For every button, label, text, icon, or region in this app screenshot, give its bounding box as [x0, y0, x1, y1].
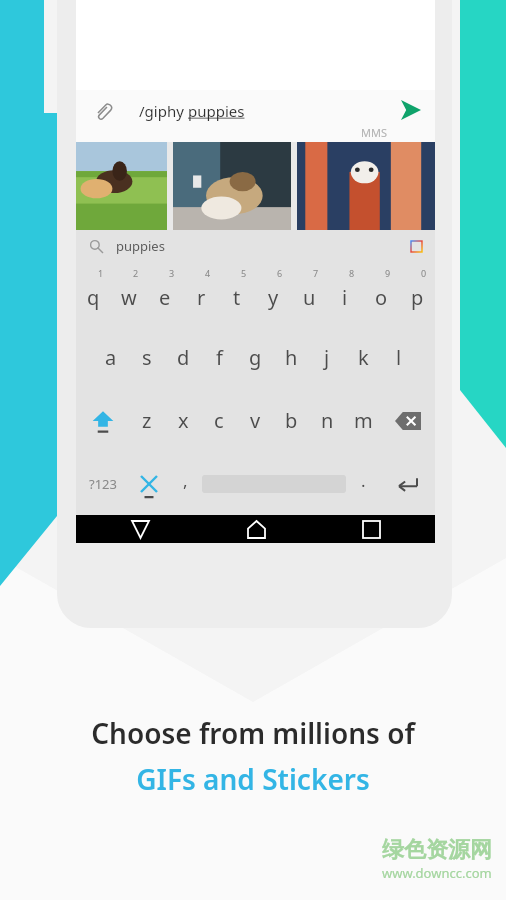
- staticText: h: [285, 344, 298, 371]
- staticText: b: [285, 407, 298, 434]
- staticText: puppies: [116, 237, 165, 255]
- button[interactable]: c: [201, 389, 237, 452]
- button[interactable]: l: [381, 326, 417, 389]
- staticText: Choose from millions of: [91, 714, 415, 752]
- button[interactable]: Backspace: [381, 389, 435, 452]
- staticText: f: [216, 344, 223, 371]
- button[interactable]: Home: [236, 515, 276, 543]
- staticText: t: [233, 284, 241, 311]
- staticText: n: [321, 407, 334, 434]
- button[interactable]: n: [309, 389, 345, 452]
- staticText: .: [361, 469, 366, 492]
- staticText: 5: [241, 267, 247, 279]
- button[interactable]: m: [345, 389, 381, 452]
- staticText: MMS: [361, 125, 387, 140]
- staticText: i: [342, 284, 348, 311]
- button[interactable]: v: [237, 389, 273, 452]
- staticText: g: [249, 344, 262, 371]
- button[interactable]: 0: [399, 262, 435, 326]
- staticText: 8: [349, 267, 355, 279]
- button[interactable]: Back: [120, 515, 160, 543]
- button[interactable]: 2: [111, 262, 147, 326]
- button[interactable]: Attach: [86, 95, 120, 129]
- button[interactable]: 7: [291, 262, 327, 326]
- button[interactable]: 8: [327, 262, 363, 326]
- button[interactable]: h: [273, 326, 309, 389]
- button[interactable]: b: [273, 389, 309, 452]
- staticText: k: [358, 344, 369, 371]
- staticText: 7: [313, 267, 319, 279]
- staticText: q: [87, 284, 100, 311]
- button[interactable]: 5: [219, 262, 255, 326]
- button[interactable]: s: [129, 326, 165, 389]
- button[interactable]: [202, 468, 346, 499]
- button[interactable]: x: [165, 389, 201, 452]
- button[interactable]: Emoji: [130, 452, 168, 515]
- button[interactable]: k: [345, 326, 381, 389]
- button[interactable]: 1: [76, 262, 111, 326]
- button[interactable]: .: [346, 452, 380, 515]
- staticText: 绿色资源网: [382, 836, 492, 864]
- staticText: 9: [385, 267, 391, 279]
- staticText: GIFs and Stickers: [136, 760, 370, 798]
- staticText: l: [396, 344, 402, 371]
- button[interactable]: 3: [147, 262, 183, 326]
- button[interactable]: Enter: [380, 452, 435, 515]
- staticText: v: [250, 407, 261, 434]
- staticText: ?123: [89, 475, 117, 493]
- button[interactable]: Attach: [76, 90, 435, 142]
- staticText: /giphy: [139, 101, 188, 121]
- staticText: e: [159, 284, 171, 311]
- staticText: 4: [205, 267, 211, 279]
- staticText: www.downcc.com: [382, 864, 492, 882]
- staticText: s: [142, 344, 152, 371]
- staticText: 3: [169, 267, 175, 279]
- staticText: d: [177, 344, 190, 371]
- button[interactable]: 9: [363, 262, 399, 326]
- staticText: ,: [183, 469, 188, 492]
- staticText: 6: [277, 267, 283, 279]
- button[interactable]: j: [309, 326, 345, 389]
- staticText: y: [268, 284, 279, 311]
- button[interactable]: [297, 142, 435, 230]
- staticText: u: [303, 284, 316, 311]
- staticText: o: [375, 284, 388, 311]
- button[interactable]: puppies: [76, 230, 435, 262]
- button[interactable]: ,: [168, 452, 202, 515]
- button[interactable]: [76, 142, 167, 230]
- staticText: puppies: [188, 101, 245, 121]
- staticText: z: [142, 407, 152, 434]
- button[interactable]: f: [201, 326, 237, 389]
- button[interactable]: Shift: [76, 389, 129, 452]
- button[interactable]: a: [93, 326, 129, 389]
- button[interactable]: ?123: [76, 452, 130, 515]
- button[interactable]: d: [165, 326, 201, 389]
- staticText: w: [121, 284, 137, 311]
- button[interactable]: Recents: [351, 515, 391, 543]
- staticText: j: [324, 344, 330, 371]
- button[interactable]: z: [129, 389, 165, 452]
- staticText: 0: [421, 267, 427, 279]
- staticText: 1: [98, 267, 104, 279]
- button[interactable]: [173, 142, 291, 230]
- staticText: c: [214, 407, 224, 434]
- staticText: x: [178, 407, 189, 434]
- staticText: p: [411, 284, 424, 311]
- button[interactable]: Send: [393, 92, 429, 128]
- button[interactable]: g: [237, 326, 273, 389]
- staticText: a: [105, 344, 117, 371]
- staticText: m: [354, 407, 373, 434]
- staticText: 2: [133, 267, 139, 279]
- staticText: r: [197, 284, 206, 311]
- button[interactable]: 4: [183, 262, 219, 326]
- button[interactable]: 6: [255, 262, 291, 326]
